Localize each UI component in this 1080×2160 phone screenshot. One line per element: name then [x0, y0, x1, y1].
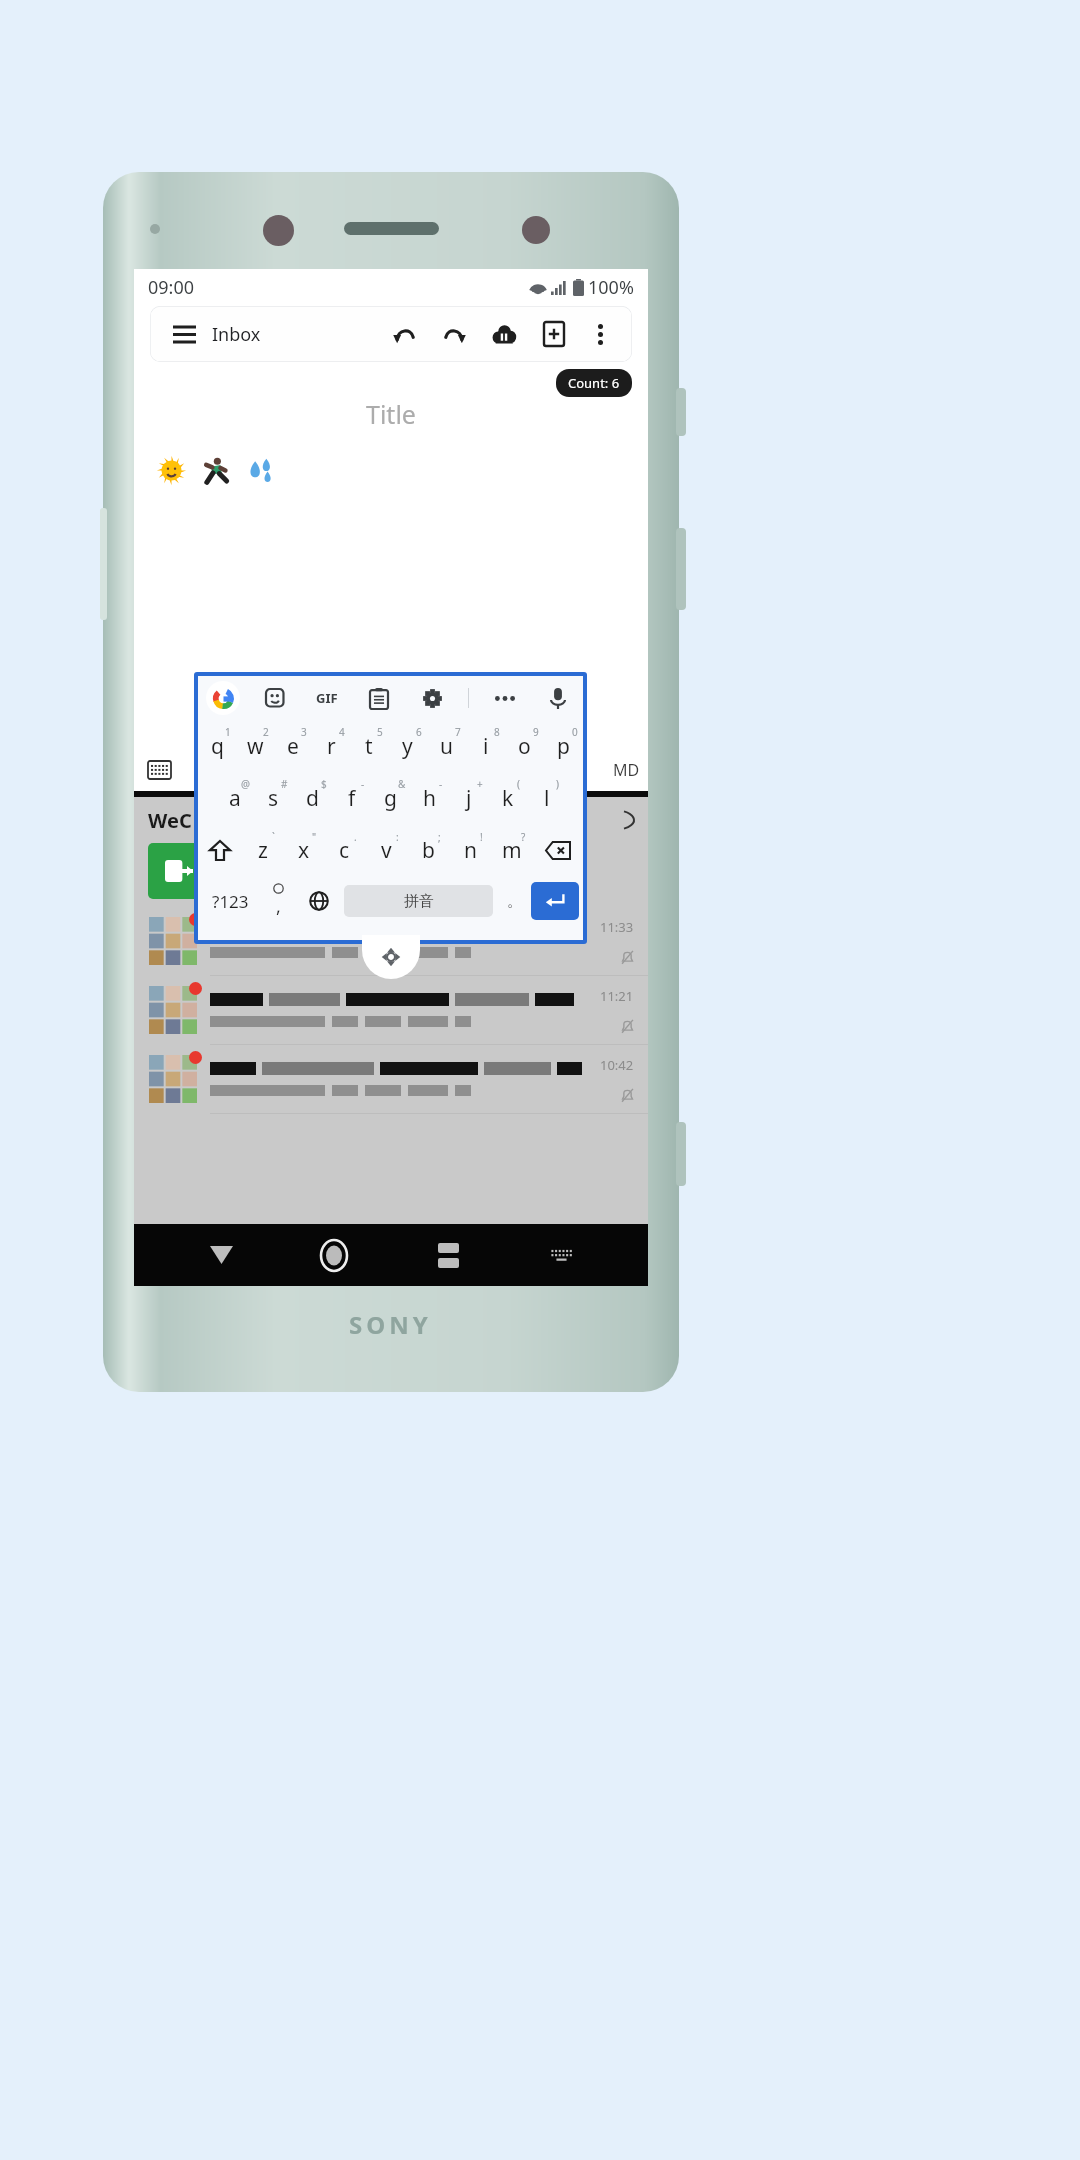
button[interactable]: x	[283, 824, 324, 876]
button[interactable]: g	[371, 772, 410, 824]
button[interactable]: Clipboard	[362, 681, 396, 715]
button[interactable]: m	[491, 824, 533, 876]
staticText: !	[480, 830, 483, 844]
staticText: ?123	[212, 890, 249, 913]
button[interactable]: Switch input method	[535, 1229, 587, 1281]
button[interactable]: 11:21	[134, 976, 648, 1045]
staticText: 11:33	[600, 918, 634, 936]
staticText: e	[287, 732, 299, 761]
button[interactable]: n	[449, 824, 491, 876]
button[interactable]: p	[544, 720, 583, 772]
staticText: k	[502, 784, 514, 813]
staticText: 。	[507, 892, 522, 911]
button[interactable]: Shift	[198, 824, 242, 876]
button[interactable]: Navigation menu	[166, 316, 202, 352]
staticText: 2	[263, 725, 269, 739]
button[interactable]: j	[449, 772, 488, 824]
button[interactable]: Change language	[298, 876, 340, 926]
button[interactable]: Back	[195, 1229, 247, 1281]
button[interactable]: More	[488, 681, 522, 715]
button[interactable]: b	[407, 824, 449, 876]
button[interactable]: a	[215, 772, 254, 824]
button[interactable]: Voice input	[541, 681, 575, 715]
staticText: s	[268, 784, 279, 813]
button[interactable]: t	[350, 720, 388, 772]
staticText: MD	[613, 759, 640, 781]
button[interactable]: Recent apps	[422, 1229, 474, 1281]
staticText: w	[247, 732, 264, 761]
button[interactable]: y	[388, 720, 427, 772]
staticText: )	[556, 777, 559, 791]
staticText: "	[312, 830, 317, 844]
button[interactable]: 拼音	[344, 885, 493, 917]
button[interactable]: w	[236, 720, 274, 772]
button[interactable]: Backspace	[533, 824, 583, 876]
staticText: 4	[339, 725, 345, 739]
button[interactable]: l	[527, 772, 566, 824]
button[interactable]: Move keyboard	[362, 935, 420, 979]
staticText: 0	[572, 725, 578, 739]
button[interactable]: Settings	[415, 681, 449, 715]
button[interactable]: Enter	[531, 882, 579, 920]
button[interactable]: 。	[497, 876, 531, 926]
staticText: .	[354, 830, 357, 844]
staticText: @	[241, 777, 250, 791]
staticText: o	[518, 732, 531, 761]
staticText: 9	[533, 725, 539, 739]
button[interactable]: d	[293, 772, 332, 824]
button[interactable]: Google search	[206, 681, 240, 715]
button[interactable]: Add	[536, 316, 572, 352]
button[interactable]: Count: 6	[556, 369, 632, 397]
staticText: GIF	[316, 689, 338, 707]
staticText: j	[466, 784, 472, 813]
staticText: r	[327, 732, 336, 761]
staticText: Title	[366, 397, 416, 431]
button[interactable]: o	[505, 720, 544, 772]
staticText: -	[439, 777, 443, 791]
button[interactable]: ?123	[202, 876, 258, 926]
button[interactable]: c	[324, 824, 365, 876]
staticText: i	[483, 732, 489, 761]
button[interactable]: h	[410, 772, 449, 824]
button[interactable]: Home	[308, 1229, 360, 1281]
button[interactable]: Emoji and comma	[258, 876, 298, 926]
button[interactable]: z	[242, 824, 283, 876]
staticText: ?	[521, 830, 526, 844]
staticText: 10:42	[600, 1056, 634, 1074]
staticText: #	[281, 777, 288, 791]
staticText: :	[396, 830, 399, 844]
staticText: y	[402, 732, 413, 761]
staticText: m	[502, 836, 522, 865]
staticText: Count: 6	[568, 374, 620, 392]
button[interactable]: 10:42	[134, 1045, 648, 1114]
button[interactable]: Chat	[148, 843, 210, 899]
staticText: $	[321, 777, 327, 791]
button[interactable]: Stickers	[258, 681, 292, 715]
staticText: a	[229, 784, 241, 813]
button[interactable]: 11:33	[134, 907, 648, 976]
button[interactable]: Redo	[436, 316, 472, 352]
button[interactable]: GIF	[310, 681, 344, 715]
button[interactable]: e	[274, 720, 312, 772]
staticText: z	[258, 836, 268, 865]
staticText: 6	[416, 725, 422, 739]
button[interactable]: More options	[582, 316, 618, 352]
button[interactable]: s	[254, 772, 293, 824]
button[interactable]: f	[332, 772, 371, 824]
staticText: t	[365, 732, 373, 761]
button[interactable]: q	[198, 720, 236, 772]
button[interactable]: Inbox	[212, 322, 261, 347]
button[interactable]: u	[427, 720, 466, 772]
staticText: 11:21	[600, 987, 634, 1005]
button[interactable]: v	[365, 824, 407, 876]
staticText: `	[272, 830, 275, 844]
staticText: SONY	[349, 1308, 432, 1341]
button[interactable]: k	[488, 772, 527, 824]
staticText: 100%	[588, 275, 634, 300]
button[interactable]: Sync	[486, 316, 522, 352]
button[interactable]: r	[312, 720, 350, 772]
staticText: (	[517, 777, 520, 791]
button[interactable]: Undo	[386, 316, 422, 352]
staticText: WeC	[148, 807, 192, 834]
button[interactable]: i	[466, 720, 505, 772]
